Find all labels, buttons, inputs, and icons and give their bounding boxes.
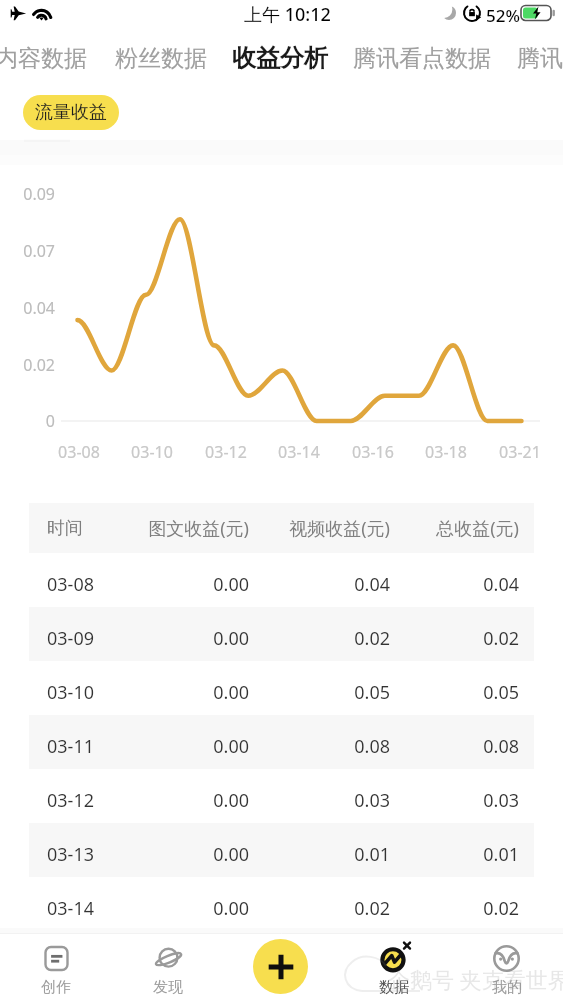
button[interactable]: 03-12 — [29, 769, 534, 823]
staticText: 03-08 — [49, 441, 109, 463]
button[interactable]: 发现 — [112, 928, 224, 1000]
staticText: 0.02 — [29, 896, 519, 921]
staticText: 视频收益(元) — [29, 516, 390, 541]
staticText: 52% — [486, 4, 520, 27]
button[interactable]: 粉丝数据 — [103, 41, 219, 75]
staticText: 0.00 — [29, 734, 249, 759]
staticText: 0.05 — [29, 680, 390, 705]
button[interactable]: 我的 — [450, 928, 563, 1000]
button[interactable]: 腾讯看点 — [505, 41, 563, 75]
staticText: 粉丝数据 — [115, 44, 207, 73]
button[interactable]: 03-14 — [29, 877, 534, 931]
staticText: 03-21 — [490, 441, 550, 463]
staticText: 发现 — [153, 978, 183, 997]
button[interactable]: 内容数据 — [0, 41, 99, 75]
staticText: 数据 — [379, 978, 409, 997]
staticText: 内容数据 — [0, 44, 87, 73]
staticText: 0.04 — [29, 572, 390, 597]
staticText: 总收益(元) — [29, 516, 519, 541]
staticText: 03-09 — [47, 626, 94, 651]
staticText: 0.00 — [29, 788, 249, 813]
button[interactable]: Add — [253, 939, 308, 994]
staticText: 0.04 — [0, 297, 55, 319]
button[interactable]: 03-08 — [29, 553, 534, 607]
staticText: 0.09 — [0, 183, 55, 205]
staticText: 03-16 — [343, 441, 403, 463]
staticText: 03-13 — [47, 842, 94, 867]
staticText: 0.00 — [29, 626, 249, 651]
staticText: 0.02 — [0, 354, 55, 376]
staticText: 03-12 — [47, 788, 94, 813]
button[interactable]: 03-10 — [29, 661, 534, 715]
staticText: 03-14 — [47, 896, 94, 921]
button[interactable]: 创作 — [0, 928, 112, 1000]
staticText: 0.01 — [29, 842, 519, 867]
button[interactable]: 数据 — [337, 928, 450, 1000]
staticText: 0.02 — [29, 896, 390, 921]
staticText: 腾讯看点数据 — [353, 44, 491, 73]
staticText: 0.08 — [29, 734, 519, 759]
staticText: 03-08 — [47, 572, 94, 597]
staticText: 0.02 — [29, 626, 519, 651]
staticText: 流量收益 — [35, 101, 107, 124]
button[interactable]: 03-09 — [29, 607, 534, 661]
staticText: 0.01 — [29, 842, 390, 867]
button[interactable]: 收益分析 — [220, 41, 340, 75]
staticText: 0.00 — [29, 680, 249, 705]
staticText: 图文收益(元) — [29, 516, 249, 541]
button[interactable]: 03-13 — [29, 823, 534, 877]
staticText: 0.08 — [29, 734, 390, 759]
staticText: 0.00 — [29, 896, 249, 921]
staticText: 0 — [0, 410, 55, 432]
button[interactable]: 03-11 — [29, 715, 534, 769]
staticText: 0.03 — [29, 788, 390, 813]
staticText: 我的 — [492, 978, 522, 997]
staticText: 收益分析 — [232, 43, 328, 73]
staticText: 03-10 — [122, 441, 182, 463]
staticText: 0.04 — [29, 572, 519, 597]
staticText: 03-12 — [196, 441, 256, 463]
staticText: 0.05 — [29, 680, 519, 705]
staticText: 0.00 — [29, 842, 249, 867]
button[interactable]: 流量收益 — [23, 95, 119, 130]
staticText: 企鹅号 夹克看世界 — [388, 964, 563, 994]
staticText: 0.00 — [29, 572, 249, 597]
staticText: 腾讯看点 — [517, 44, 563, 73]
staticText: 创作 — [41, 978, 71, 997]
staticText: 03-11 — [47, 734, 94, 759]
staticText: 03-10 — [47, 680, 94, 705]
staticText: 0.03 — [29, 788, 519, 813]
button[interactable]: 时间 — [29, 503, 534, 553]
staticText: 03-14 — [269, 441, 329, 463]
staticText: 0.02 — [29, 626, 390, 651]
staticText: 03-18 — [416, 441, 476, 463]
staticText: 上午 10:12 — [244, 2, 331, 27]
button[interactable]: 腾讯看点数据 — [341, 41, 503, 75]
staticText: 时间 — [47, 517, 83, 540]
staticText: 0.07 — [0, 240, 55, 262]
